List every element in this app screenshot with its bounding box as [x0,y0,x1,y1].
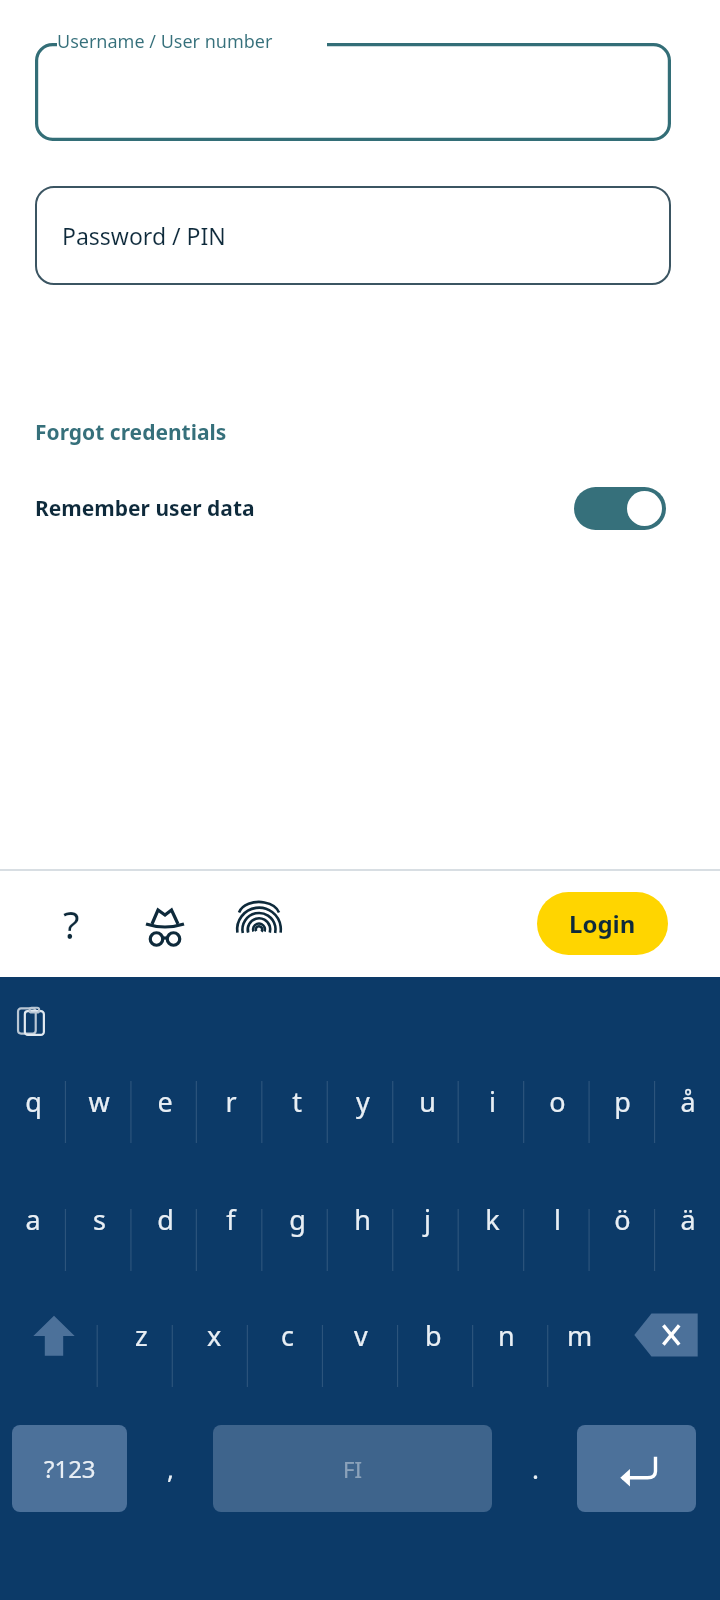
button[interactable]: y [330,1063,395,1139]
staticText: n [498,1317,515,1354]
button[interactable]: g [264,1181,330,1257]
staticText: i [489,1083,496,1120]
staticText: f [226,1201,236,1238]
staticText: t [292,1083,302,1120]
button[interactable]: j [395,1181,460,1257]
staticText: r [225,1083,237,1120]
staticText: ? [63,898,80,950]
staticText: j [424,1201,431,1238]
staticText: d [157,1201,174,1238]
button[interactable]: q [0,1063,66,1139]
button[interactable]: p [590,1063,655,1139]
button[interactable]: Backspace [620,1297,712,1373]
staticText: c [281,1317,294,1354]
staticText: a [25,1201,41,1238]
button[interactable]: h [330,1181,395,1257]
staticText: q [25,1083,42,1120]
button[interactable]: d [132,1181,198,1257]
button[interactable]: z [104,1297,178,1373]
staticText: ä [680,1201,696,1238]
button[interactable]: s [66,1181,132,1257]
staticText: u [419,1083,436,1120]
button[interactable]: Shift [8,1297,100,1373]
button[interactable]: i [460,1063,525,1139]
staticText: Forgot credentials [35,418,227,447]
staticText: Remember user data [35,494,255,523]
staticText: , [167,1451,174,1486]
staticText: e [157,1083,173,1120]
staticText: k [485,1201,500,1238]
button[interactable] [35,43,671,141]
button[interactable]: m [543,1297,616,1373]
button[interactable]: Help [40,893,102,955]
button[interactable]: Remember user data [0,480,720,536]
button[interactable]: å [655,1063,720,1139]
staticText: å [680,1083,696,1120]
button[interactable]: Enter [577,1425,696,1512]
staticText: Username / User number [57,29,273,54]
staticText: g [289,1201,306,1238]
button[interactable]: Clipboard [8,995,58,1045]
button[interactable]: v [324,1297,397,1373]
button[interactable]: w [66,1063,132,1139]
staticText: Login [569,907,636,940]
staticText: v [354,1317,368,1354]
staticText: Password / PIN [62,220,226,251]
button[interactable]: f [198,1181,264,1257]
button[interactable]: ä [655,1181,720,1257]
staticText: o [549,1083,566,1120]
staticText: ö [614,1201,631,1238]
staticText: m [567,1317,593,1354]
staticText: b [425,1317,442,1354]
button[interactable]: Incognito login [134,893,196,955]
button[interactable]: Forgot credentials [35,418,227,447]
button[interactable]: o [525,1063,590,1139]
button[interactable]: , [135,1425,205,1512]
staticText: y [356,1083,370,1120]
staticText: w [88,1083,110,1120]
staticText: z [135,1317,148,1354]
button[interactable]: ö [590,1181,655,1257]
button[interactable]: l [525,1181,590,1257]
button[interactable]: . [500,1425,570,1512]
staticText: x [207,1317,222,1354]
staticText: FI [343,1454,362,1484]
staticText: p [614,1083,631,1120]
button[interactable]: a [0,1181,66,1257]
button[interactable]: u [395,1063,460,1139]
button[interactable]: e [132,1063,198,1139]
button[interactable]: t [264,1063,330,1139]
staticText: l [554,1201,561,1238]
button[interactable]: c [251,1297,324,1373]
button[interactable]: Fingerprint login [228,893,290,955]
staticText: . [532,1451,539,1486]
button[interactable]: k [460,1181,525,1257]
staticText: h [354,1201,371,1238]
button[interactable]: Password / PIN [35,186,671,285]
staticText: s [93,1201,106,1238]
button[interactable]: n [470,1297,543,1373]
button[interactable]: FI [213,1425,492,1512]
button[interactable]: Login [537,892,668,955]
button[interactable]: b [397,1297,470,1373]
button[interactable]: ?123 [12,1425,127,1512]
staticText: ?123 [44,1452,96,1485]
button[interactable]: r [198,1063,264,1139]
button[interactable]: x [178,1297,251,1373]
